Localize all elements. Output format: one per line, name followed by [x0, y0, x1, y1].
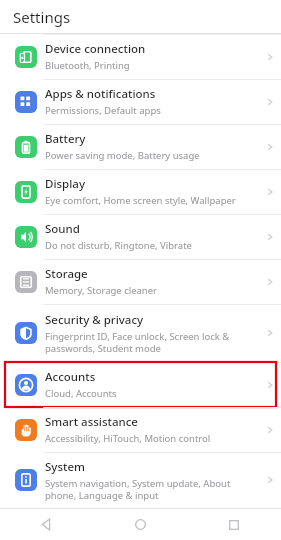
staticText: Battery	[45, 131, 86, 147]
staticText: Do not disturb, Ringtone, Vibrate	[45, 239, 192, 252]
button[interactable]: Sound	[0, 214, 281, 259]
button[interactable]: Security & privacy	[0, 304, 281, 362]
staticText: Storage	[45, 266, 88, 282]
button[interactable]: Smart assistance	[0, 407, 281, 452]
button[interactable]: Accounts	[0, 362, 281, 407]
staticText: Smart assistance	[45, 414, 138, 430]
staticText: Security & privacy	[45, 312, 144, 328]
button[interactable]: Recents	[187, 509, 281, 540]
staticText: Accessibility, HiTouch, Motion control	[45, 432, 211, 445]
button[interactable]: Apps & notifications	[0, 79, 281, 124]
button[interactable]: Battery	[0, 124, 281, 169]
button[interactable]: Storage	[0, 259, 281, 304]
staticText: Permissions, Default apps	[45, 104, 161, 117]
staticText: Device connection	[45, 41, 146, 57]
button[interactable]: Back	[0, 509, 93, 540]
staticText: Fingerprint ID, Face unlock, Screen lock…	[45, 330, 230, 355]
staticText: Cloud, Accounts	[45, 387, 117, 400]
staticText: Settings	[13, 7, 71, 27]
button[interactable]: Display	[0, 169, 281, 214]
staticText: Display	[45, 176, 85, 192]
staticText: Sound	[45, 221, 80, 237]
staticText: Bluetooth, Printing	[45, 59, 130, 72]
staticText: System navigation, System update, About …	[45, 477, 231, 502]
staticText: Apps & notifications	[45, 86, 156, 102]
staticText: Eye comfort, Home screen style, Wallpape…	[45, 194, 236, 207]
button[interactable]: Home	[93, 509, 187, 540]
staticText: Accounts	[45, 369, 96, 385]
staticText: System	[45, 459, 85, 475]
button[interactable]: System	[0, 452, 281, 508]
staticText: Power saving mode, Battery usage	[45, 149, 200, 162]
staticText: Memory, Storage cleaner	[45, 284, 157, 297]
button[interactable]: Device connection	[0, 34, 281, 79]
